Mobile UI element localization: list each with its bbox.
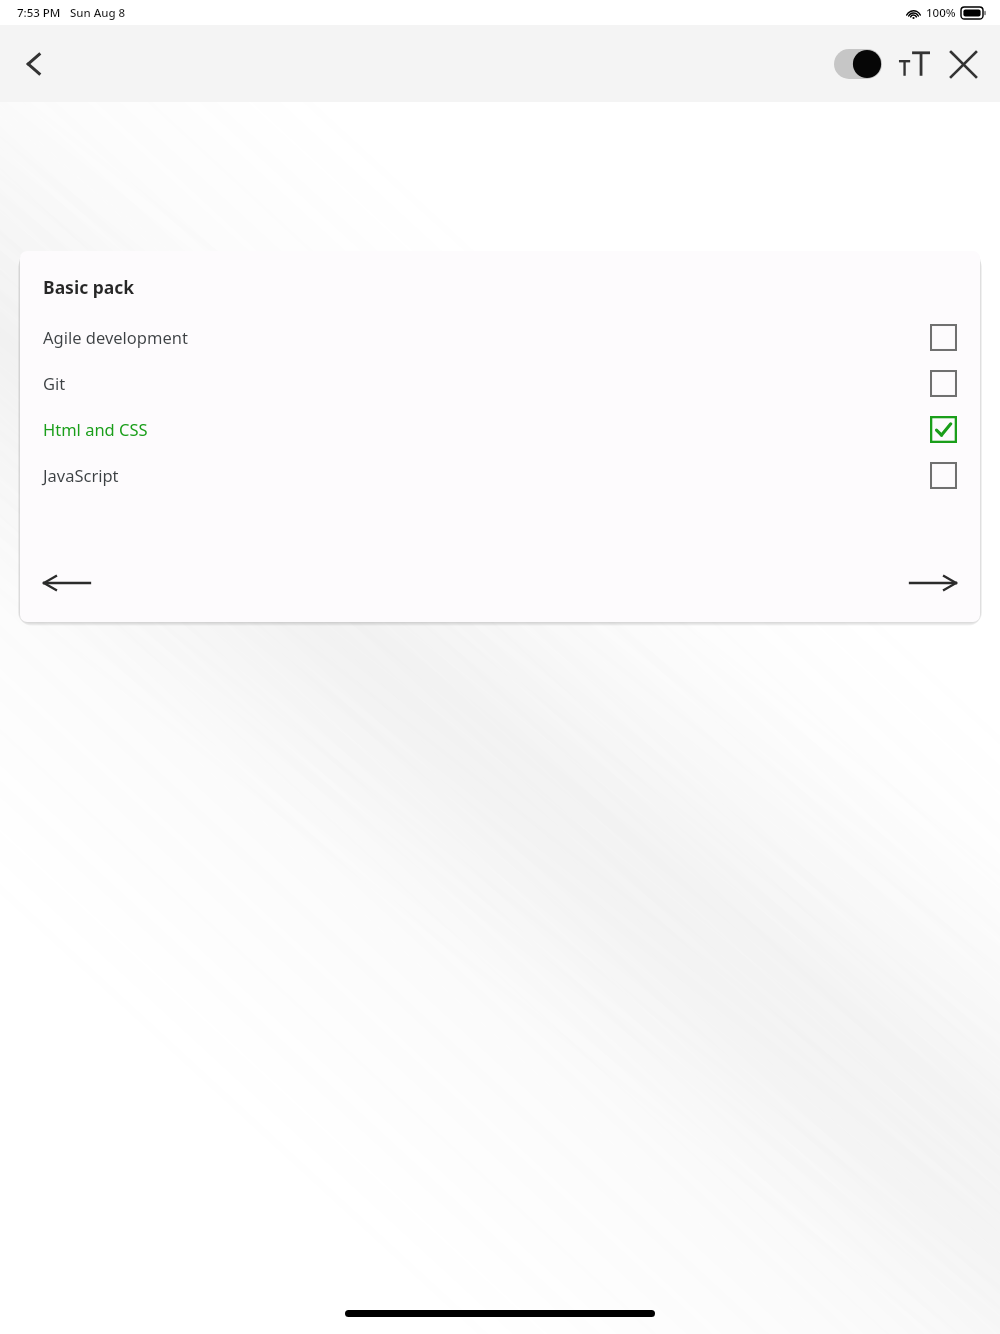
button[interactable]: Next [902,558,964,608]
button[interactable]: Git [20,360,980,406]
staticText: Git [43,372,930,394]
button[interactable]: Previous [36,558,98,608]
staticText: Agile development [43,326,930,348]
button[interactable]: Agile development [20,314,980,360]
button[interactable]: Toggle [832,47,884,81]
button[interactable]: Close [940,41,986,87]
button[interactable]: JavaScript [20,452,980,498]
button[interactable]: Back [8,38,60,90]
staticText: JavaScript [43,464,930,486]
button[interactable]: Html and CSS [20,406,980,452]
staticText: Sun Aug 8 [70,5,126,21]
staticText: Basic pack [43,275,135,299]
button[interactable]: Text size [892,42,936,86]
staticText: 7:53 PM [17,5,61,21]
staticText: Html and CSS [43,418,930,440]
staticText: 100% [926,5,956,21]
